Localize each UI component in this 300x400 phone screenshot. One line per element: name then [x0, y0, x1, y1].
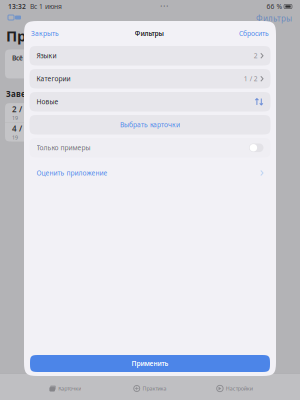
button[interactable]: Языки: [29, 46, 270, 65]
button[interactable]: Настройки: [192, 378, 277, 399]
staticText: 66 %: [266, 2, 282, 11]
button[interactable]: Категории: [29, 69, 270, 88]
button[interactable]: Применить: [30, 355, 270, 372]
staticText: 2: [254, 51, 258, 60]
staticText: 13:32: [8, 2, 26, 11]
button[interactable]: Новые: [29, 92, 270, 111]
staticText: Сбросить: [239, 29, 269, 38]
button[interactable]: Карточки: [23, 378, 108, 399]
staticText: Фильтры: [256, 13, 292, 24]
staticText: Применить: [131, 359, 168, 368]
staticText: Выбрать карточки: [120, 120, 180, 129]
staticText: 4 /: [12, 123, 22, 134]
staticText: Настройки: [226, 385, 253, 392]
staticText: Практика: [142, 385, 166, 392]
button[interactable]: Сбросить: [237, 26, 271, 41]
staticText: Только примеры: [36, 143, 90, 152]
staticText: 2 /: [12, 104, 22, 114]
staticText: Языки: [36, 51, 56, 60]
button[interactable]: Практика: [108, 378, 192, 399]
staticText: Категории: [36, 74, 70, 83]
staticText: Фильтры: [134, 29, 163, 38]
button[interactable]: Оценить приложение: [29, 161, 270, 185]
staticText: Закрыть: [31, 29, 59, 38]
staticText: Новые: [36, 97, 58, 106]
staticText: Заве: [6, 88, 26, 99]
staticText: Пра: [6, 26, 35, 45]
staticText: Вс 1 июня: [30, 2, 62, 11]
staticText: Оценить приложение: [36, 169, 107, 177]
button[interactable]: Выбрать карточки: [29, 115, 270, 134]
button[interactable]: Только примеры: [29, 138, 270, 157]
staticText: • • •: [160, 3, 168, 10]
staticText: Всё: [12, 53, 23, 62]
staticText: Карточки: [58, 385, 81, 392]
staticText: 19: [12, 114, 18, 121]
button[interactable]: Закрыть: [29, 26, 61, 41]
staticText: 1 / 2: [244, 74, 258, 83]
staticText: 19: [12, 134, 18, 141]
